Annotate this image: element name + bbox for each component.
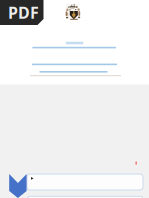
button[interactable]: Text field: [27, 174, 143, 190]
button[interactable]: Text field: [27, 196, 143, 198]
button[interactable]: PDF document: [0, 0, 44, 26]
staticText: PDF: [8, 2, 39, 23]
